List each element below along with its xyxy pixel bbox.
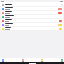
button[interactable]: Label	[58, 24, 62, 26]
button[interactable]: Profile	[60, 58, 63, 62]
button[interactable]: Label	[1, 11, 63, 14]
button[interactable]: Label	[58, 12, 62, 14]
button[interactable]: Label	[59, 20, 62, 22]
button[interactable]: Label	[1, 27, 63, 30]
button[interactable]: Label	[1, 19, 63, 22]
button[interactable]: Tasks	[40, 58, 43, 62]
button[interactable]: Menu	[1, 3, 4, 6]
button[interactable]: Search	[60, 3, 63, 6]
button[interactable]: Home	[1, 58, 4, 62]
button[interactable]: Label	[1, 23, 63, 26]
button[interactable]: Label	[59, 28, 62, 30]
button[interactable]: Label	[1, 7, 63, 10]
button[interactable]	[1, 15, 63, 18]
button[interactable]: Favorites	[21, 58, 24, 62]
button[interactable]: Label	[58, 8, 62, 10]
